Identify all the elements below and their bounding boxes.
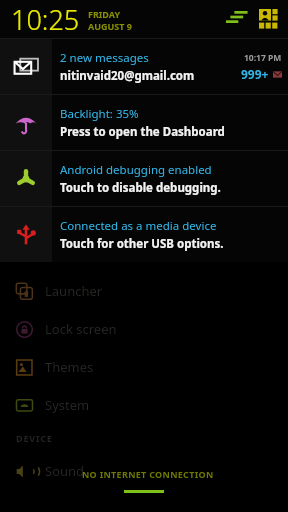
button[interactable]: Connected as a media device [0,207,288,262]
staticText: Touch for other USB options. [60,236,224,252]
staticText: nitinvaid20@gmail.com [60,68,195,84]
staticText: Sound [45,462,85,480]
button[interactable]: Themes [0,348,288,386]
staticText: Backlight: 35% [60,106,139,122]
button[interactable]: Signal strength [220,2,254,36]
staticText: Lock screen [45,320,117,338]
button[interactable]: Launcher [0,272,288,310]
staticText: System [45,396,90,414]
button[interactable]: Lock screen [0,310,288,348]
staticText: Themes [45,358,94,376]
staticText: 10:25 [11,1,80,38]
button[interactable]: Quick settings [254,2,284,36]
staticText: Press to open the Dashboard [60,124,225,140]
button[interactable]: 2 new messages [0,39,288,94]
button[interactable]: System [0,386,288,424]
button[interactable]: Backlight: 35% [0,95,288,150]
staticText: NO INTERNET CONNECTION [82,468,214,480]
staticText: 2 new messages [60,50,149,66]
staticText: Android debugging enabled [60,162,212,178]
button[interactable]: Android debugging enabled [0,151,288,206]
button[interactable]: Sound [0,452,288,490]
staticText: Launcher [45,282,103,300]
staticText: AUGUST 9 [88,20,132,32]
staticText: DEVICE [16,432,53,444]
staticText: Connected as a media device [60,218,217,234]
staticText: 999+ [241,66,269,82]
staticText: 10:17 PM [244,52,282,64]
staticText: FRIDAY [88,8,121,20]
staticText: Touch to disable debugging. [60,180,221,196]
